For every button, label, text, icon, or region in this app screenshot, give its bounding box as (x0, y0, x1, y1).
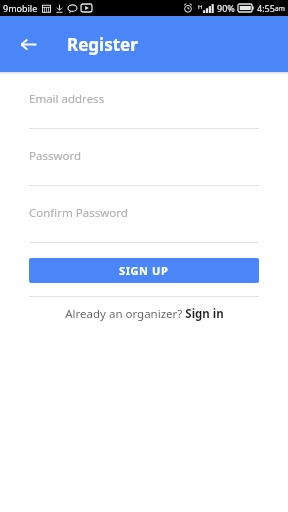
button[interactable]: Email address (29, 91, 259, 129)
staticText: Confirm Password (29, 205, 128, 221)
staticText: 90% (217, 2, 235, 14)
button[interactable]: Already an organizer? Sign in (29, 306, 259, 322)
staticText: Already an organizer? Sign in (65, 306, 224, 322)
staticText: am (275, 4, 285, 13)
button[interactable]: Back (10, 26, 46, 62)
button[interactable]: SIGN UP (29, 258, 259, 283)
staticText: 4:55 (257, 2, 275, 14)
button[interactable]: Confirm Password (29, 205, 259, 243)
staticText: 9mobile (3, 2, 38, 14)
button[interactable]: Password (29, 148, 259, 186)
staticText: Email address (29, 91, 105, 107)
staticText: Password (29, 148, 82, 164)
staticText: SIGN UP (119, 263, 169, 278)
staticText: Register (67, 33, 138, 56)
staticText: H (198, 3, 203, 10)
